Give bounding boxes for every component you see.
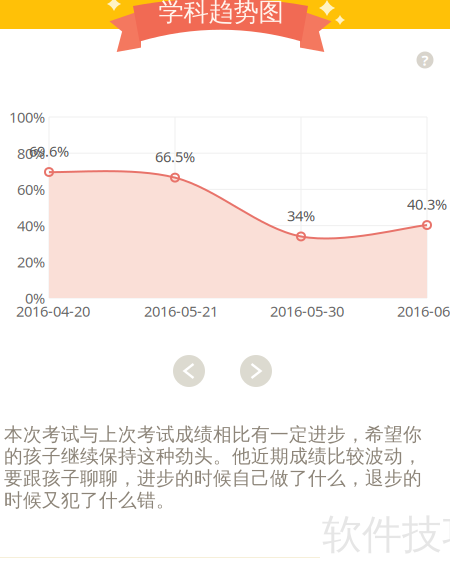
staticText: 学科趋势图 — [158, 0, 283, 27]
staticText: 100% — [9, 107, 45, 127]
staticText: 40.3% — [407, 194, 447, 214]
button[interactable]: Previous — [169, 351, 209, 391]
staticText: 0% — [25, 288, 45, 308]
staticText: 34% — [287, 206, 315, 225]
staticText: 本次考试与上次考试成绩相比有一定进步，希望你的孩子继续保持这种劲头。他近期成绩比… — [4, 423, 422, 512]
staticText: 69.6% — [29, 141, 69, 161]
staticText: 40% — [17, 216, 45, 235]
staticText: 2016-04-20 — [16, 301, 90, 321]
staticText: 2016-06 — [397, 301, 450, 321]
staticText: 80% — [17, 143, 45, 163]
staticText: ? — [421, 50, 428, 70]
staticText: 2016-05-30 — [270, 301, 344, 321]
button[interactable]: Next — [236, 351, 276, 391]
staticText: 60% — [17, 180, 45, 199]
button[interactable]: Help — [412, 47, 438, 73]
staticText: 2016-05-21 — [144, 301, 218, 321]
staticText: 66.5% — [155, 147, 195, 166]
staticText: 软件技巧 — [322, 510, 450, 559]
staticText: 20% — [17, 252, 45, 272]
